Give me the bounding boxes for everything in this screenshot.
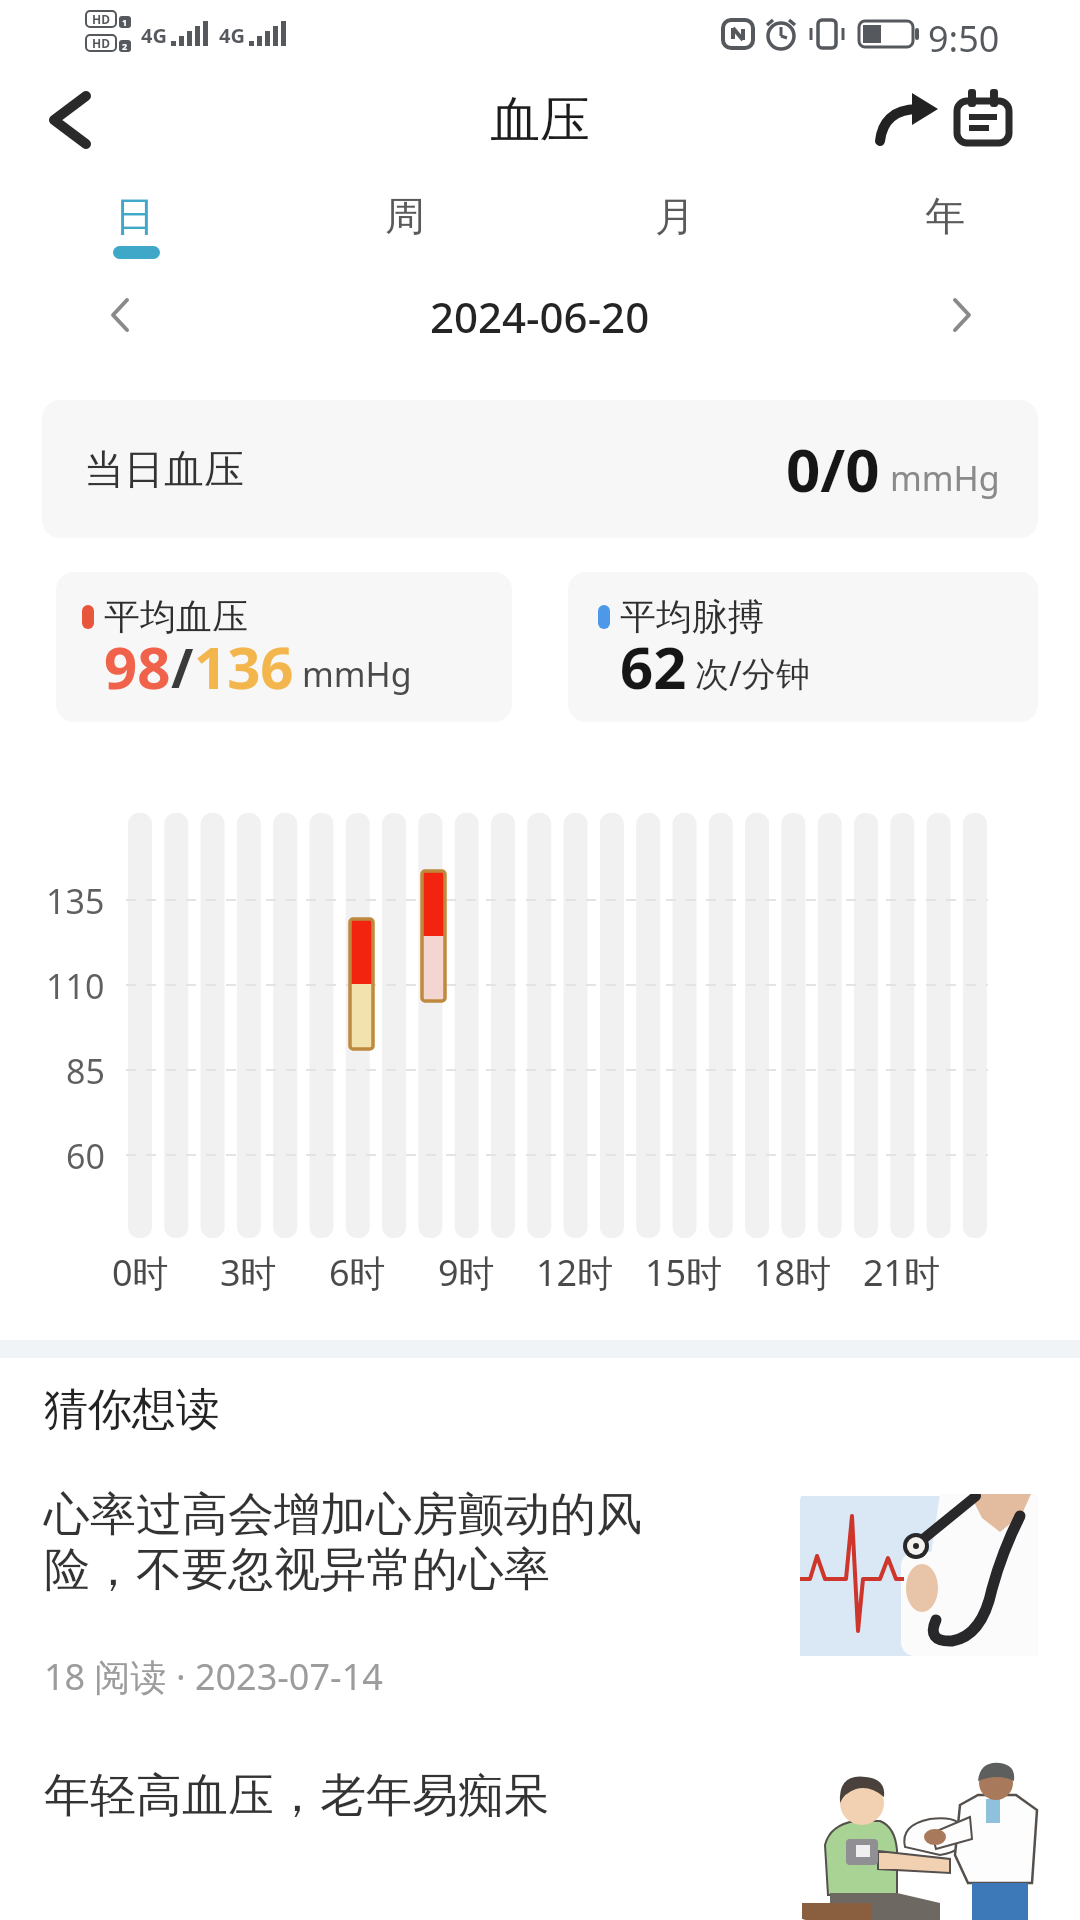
- button[interactable]: [800, 1755, 1040, 1920]
- staticText: 9:50: [928, 14, 1000, 54]
- staticText: 2: [122, 40, 128, 52]
- button[interactable]: 心率过高会增加心房颤动的风险，不要忽视异常的心率: [44, 1486, 684, 1610]
- staticText: 年: [925, 191, 965, 241]
- staticText: 110: [46, 963, 105, 1007]
- staticText: 年轻高血压，老年易痴呆: [44, 1767, 550, 1825]
- staticText: 3时: [220, 1248, 277, 1296]
- button[interactable]: [942, 294, 982, 336]
- staticText: mmHg: [302, 651, 412, 697]
- staticText: 85: [66, 1048, 105, 1092]
- button[interactable]: 周: [270, 183, 540, 249]
- button[interactable]: 平均脉搏: [568, 572, 1038, 722]
- button[interactable]: [44, 92, 96, 148]
- staticText: 0/0: [786, 428, 880, 510]
- button[interactable]: [800, 1494, 1038, 1694]
- staticText: 18 阅读 · 2023-07-14: [44, 1652, 383, 1696]
- staticText: 98: [104, 627, 171, 706]
- staticText: mmHg: [890, 455, 1000, 501]
- staticText: /: [171, 630, 194, 704]
- staticText: 62: [620, 627, 687, 706]
- staticText: 4G: [141, 22, 167, 49]
- button[interactable]: 日: [0, 183, 270, 249]
- staticText: 2024-06-20: [430, 288, 650, 342]
- button[interactable]: [876, 92, 942, 144]
- staticText: 1: [122, 16, 128, 28]
- staticText: 15时: [645, 1248, 723, 1296]
- staticText: 平均脉搏: [620, 594, 764, 639]
- staticText: HD: [92, 11, 110, 27]
- staticText: 21时: [863, 1248, 941, 1296]
- staticText: 平均血压: [104, 594, 248, 639]
- staticText: HD: [92, 35, 110, 51]
- staticText: 当日血压: [84, 444, 244, 494]
- button[interactable]: 年轻高血压，老年易痴呆: [44, 1766, 684, 1826]
- staticText: 135: [46, 878, 105, 922]
- staticText: 18时: [754, 1248, 832, 1296]
- staticText: 猜你想读: [44, 1382, 220, 1432]
- staticText: 日: [115, 191, 155, 241]
- button[interactable]: [100, 294, 140, 336]
- button[interactable]: 平均血压: [56, 572, 512, 722]
- button[interactable]: 月: [540, 183, 810, 249]
- staticText: 9时: [438, 1248, 495, 1296]
- staticText: 4G: [219, 22, 245, 49]
- staticText: 月: [655, 191, 695, 241]
- staticText: 血压: [490, 89, 590, 152]
- button[interactable]: 年: [810, 183, 1080, 249]
- staticText: 12时: [536, 1248, 614, 1296]
- staticText: 周: [385, 191, 425, 241]
- staticText: 次/分钟: [695, 650, 810, 696]
- button[interactable]: [954, 88, 1012, 146]
- staticText: 心率过高会增加心房颤动的风险，不要忽视异常的心率: [44, 1486, 684, 1599]
- staticText: 60: [66, 1133, 105, 1177]
- staticText: 6时: [329, 1248, 386, 1296]
- staticText: 136: [194, 627, 294, 706]
- staticText: 0时: [112, 1248, 169, 1296]
- button[interactable]: 当日血压: [42, 400, 1038, 538]
